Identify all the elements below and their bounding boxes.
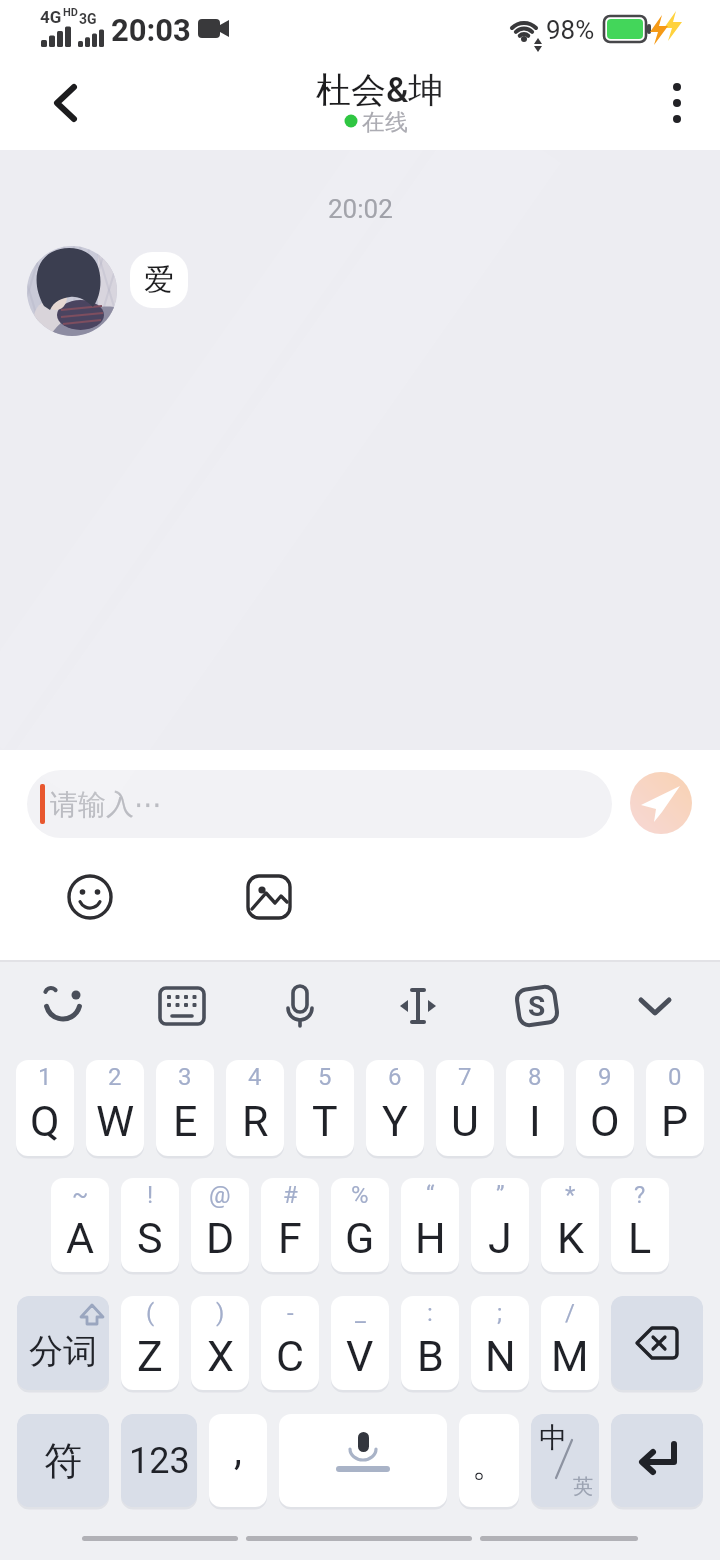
button[interactable]: 5 xyxy=(296,1060,354,1156)
staticText: J xyxy=(488,1213,512,1263)
button[interactable]: 9 xyxy=(576,1060,634,1156)
staticText: _ xyxy=(355,1299,366,1327)
staticText: 分词 xyxy=(29,1330,97,1373)
staticText: : xyxy=(427,1299,433,1327)
button[interactable]: @ xyxy=(191,1178,249,1272)
button[interactable]: ! xyxy=(121,1178,179,1272)
staticText: F xyxy=(278,1213,302,1263)
staticText: Z xyxy=(137,1331,163,1381)
staticText: ! xyxy=(147,1181,154,1209)
button[interactable] xyxy=(130,252,188,308)
staticText: 5 xyxy=(318,1063,332,1091)
staticText: E xyxy=(173,1096,198,1146)
button[interactable] xyxy=(648,72,708,136)
button[interactable]: 3 xyxy=(156,1060,214,1156)
staticText: ~ xyxy=(72,1181,89,1209)
button[interactable]: ( xyxy=(121,1296,179,1390)
staticText: 98% xyxy=(546,15,595,45)
button[interactable]: / xyxy=(541,1296,599,1390)
staticText: 7 xyxy=(458,1063,472,1091)
staticText: ; xyxy=(497,1299,503,1327)
button[interactable]: _ xyxy=(331,1296,389,1390)
button[interactable]: 2 xyxy=(86,1060,144,1156)
button[interactable] xyxy=(507,976,567,1036)
staticText: C xyxy=(276,1331,304,1381)
button[interactable]: : xyxy=(401,1296,459,1390)
button[interactable]: ) xyxy=(191,1296,249,1390)
button[interactable]: 分词 xyxy=(17,1296,109,1390)
button[interactable]: 123 xyxy=(121,1414,197,1507)
button[interactable]: 8 xyxy=(506,1060,564,1156)
button[interactable]: % xyxy=(331,1178,389,1272)
staticText: 6 xyxy=(388,1063,402,1091)
staticText: G xyxy=(345,1213,375,1263)
button[interactable]: 。 xyxy=(459,1414,519,1507)
button[interactable] xyxy=(33,976,93,1036)
staticText: S xyxy=(528,990,546,1023)
button[interactable] xyxy=(27,770,612,838)
staticText: 3 xyxy=(178,1063,192,1091)
button[interactable]: - xyxy=(261,1296,319,1390)
button[interactable]: ~ xyxy=(51,1178,109,1272)
button[interactable] xyxy=(64,871,116,923)
staticText: 请输入⋯ xyxy=(50,787,162,822)
button[interactable]: 1 xyxy=(16,1060,74,1156)
button[interactable]: ? xyxy=(611,1178,669,1272)
button[interactable]: “ xyxy=(401,1178,459,1272)
button[interactable]: # xyxy=(261,1178,319,1272)
button[interactable] xyxy=(270,976,330,1036)
button[interactable] xyxy=(388,976,448,1036)
staticText: B xyxy=(417,1331,444,1381)
staticText: 8 xyxy=(528,1063,542,1091)
button[interactable]: 中 xyxy=(531,1414,599,1507)
button[interactable]: ” xyxy=(471,1178,529,1272)
staticText: 2 xyxy=(108,1063,122,1091)
button[interactable]: ; xyxy=(471,1296,529,1390)
staticText: / xyxy=(565,1299,575,1327)
staticText: 英 xyxy=(573,1474,593,1499)
button[interactable]: 0 xyxy=(646,1060,704,1156)
staticText: * xyxy=(565,1181,576,1209)
button[interactable] xyxy=(30,72,94,136)
staticText: ( xyxy=(146,1299,155,1327)
staticText: 20:03 xyxy=(111,12,191,48)
staticText: M xyxy=(551,1331,589,1381)
staticText: D xyxy=(206,1213,235,1263)
button[interactable] xyxy=(630,772,692,834)
button[interactable]: 7 xyxy=(436,1060,494,1156)
button[interactable]: * xyxy=(541,1178,599,1272)
staticText: 123 xyxy=(129,1440,190,1482)
button[interactable] xyxy=(611,1296,703,1390)
staticText: @ xyxy=(209,1181,231,1209)
button[interactable] xyxy=(625,976,685,1036)
staticText: 1 xyxy=(38,1063,52,1091)
staticText: R xyxy=(242,1096,269,1146)
staticText: I xyxy=(529,1096,541,1146)
button[interactable] xyxy=(279,1414,447,1507)
button[interactable] xyxy=(611,1414,703,1507)
staticText: Q xyxy=(30,1096,60,1146)
staticText: “ xyxy=(426,1181,435,1209)
staticText: 20:02 xyxy=(328,194,393,224)
staticText: - xyxy=(287,1299,294,1327)
staticText: 4 xyxy=(248,1063,262,1091)
button[interactable]: 6 xyxy=(366,1060,424,1156)
staticText: X xyxy=(207,1331,234,1381)
staticText: P xyxy=(661,1096,689,1146)
staticText: 爱 xyxy=(144,261,174,299)
button[interactable]: , xyxy=(209,1414,267,1507)
staticText: T xyxy=(312,1096,338,1146)
staticText: ) xyxy=(216,1299,225,1327)
staticText: S xyxy=(137,1213,163,1263)
staticText: ” xyxy=(496,1181,505,1209)
staticText: 9 xyxy=(598,1063,612,1091)
button[interactable]: 4 xyxy=(226,1060,284,1156)
staticText: 杜会&坤 xyxy=(316,68,444,112)
staticText: 0 xyxy=(668,1063,682,1091)
button[interactable] xyxy=(152,976,212,1036)
staticText: Y xyxy=(382,1096,408,1146)
button[interactable]: 符 xyxy=(17,1414,109,1507)
staticText: , xyxy=(234,1427,242,1474)
button[interactable] xyxy=(243,871,295,923)
staticText: 中 xyxy=(539,1420,567,1455)
